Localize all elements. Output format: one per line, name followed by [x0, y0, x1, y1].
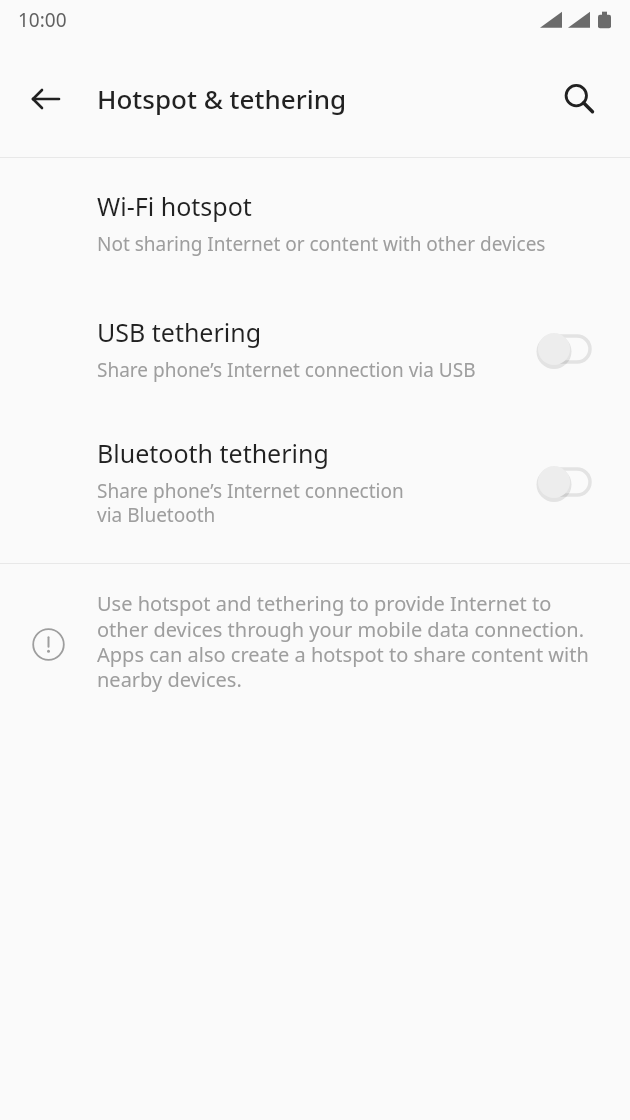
- staticText: Not sharing Internet or content with oth…: [97, 231, 546, 257]
- staticText: Share phone’s Internet connection via US…: [97, 357, 476, 383]
- button[interactable]: Wi-Fi hotspot: [0, 189, 630, 257]
- staticText: Bluetooth tethering: [97, 436, 329, 470]
- staticText: 10:00: [18, 7, 67, 33]
- button[interactable]: Back: [18, 71, 74, 127]
- staticText: Share phone’s Internet connection via Bl…: [97, 478, 432, 527]
- staticText: USB tethering: [97, 315, 262, 349]
- staticText: Wi-Fi hotspot: [97, 189, 252, 223]
- staticText: Use hotspot and tethering to provide Int…: [97, 590, 607, 692]
- staticText: Hotspot & tethering: [97, 81, 347, 116]
- button[interactable]: Bluetooth tethering: [0, 436, 630, 527]
- button[interactable]: USB tethering: [0, 315, 630, 383]
- button[interactable]: Toggle Bluetooth tethering: [538, 462, 592, 502]
- button[interactable]: Search: [551, 71, 607, 127]
- button[interactable]: Toggle USB tethering: [538, 329, 592, 369]
